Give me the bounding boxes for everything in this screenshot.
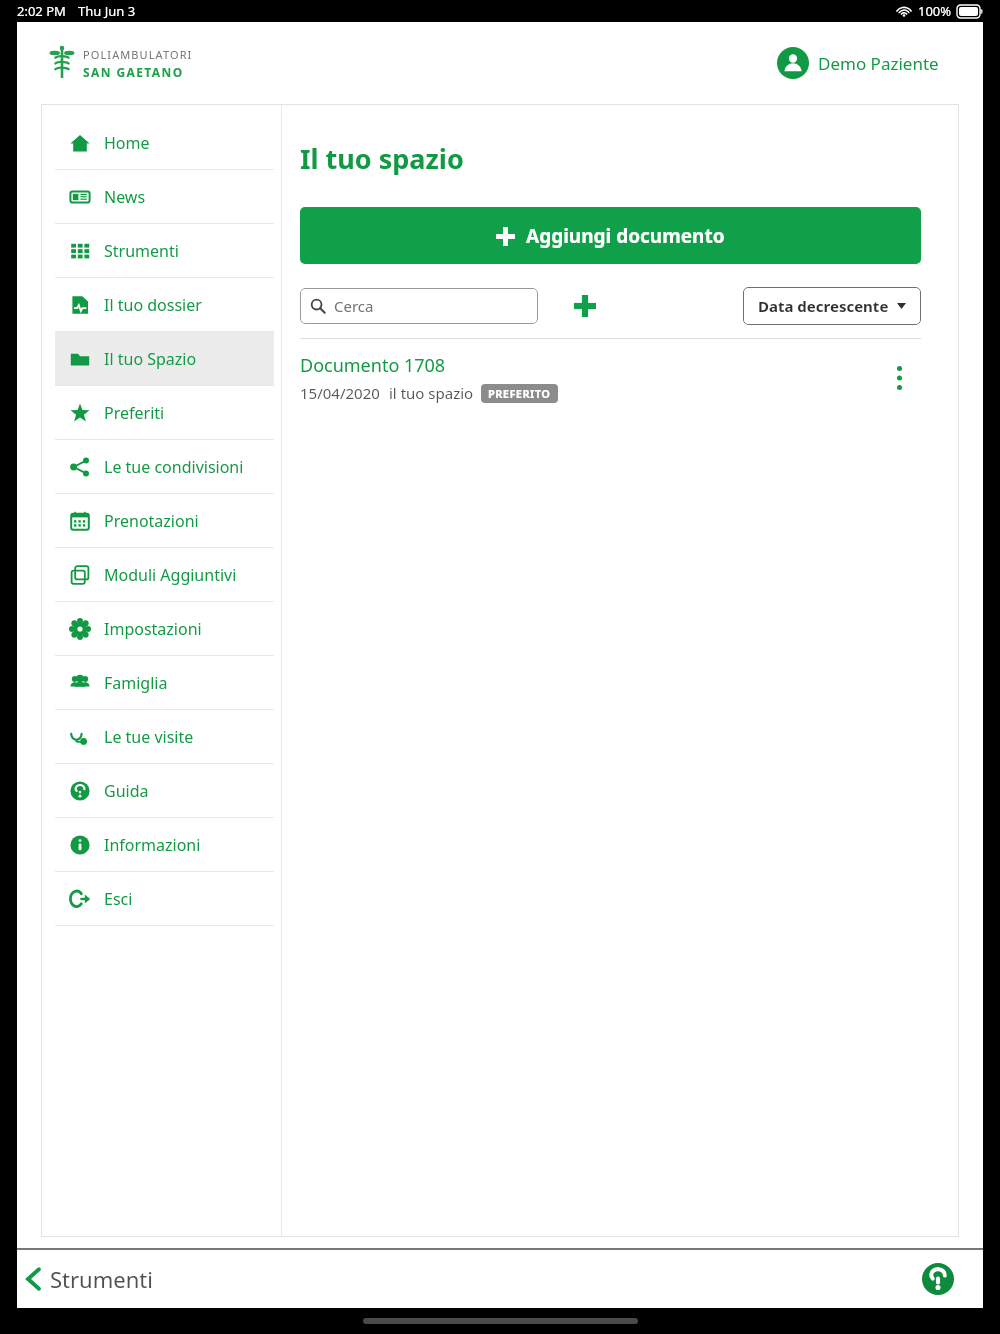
- staticText: Il tuo Spazio: [104, 348, 197, 370]
- button[interactable]: Prenotazioni: [55, 494, 274, 547]
- staticText: Famiglia: [104, 672, 168, 694]
- button[interactable]: Aiuto: [919, 1260, 957, 1298]
- staticText: Demo Paziente: [818, 52, 939, 75]
- button[interactable]: Data decrescente: [743, 287, 921, 325]
- staticText: Thu Jun 3: [78, 2, 136, 20]
- staticText: Cerca: [334, 296, 374, 316]
- staticText: Le tue visite: [104, 726, 194, 748]
- button[interactable]: Preferiti: [55, 386, 274, 439]
- staticText: Prenotazioni: [104, 510, 199, 532]
- button[interactable]: Aggiungi documento: [300, 207, 921, 264]
- staticText: 15/04/2020: [300, 383, 380, 403]
- staticText: SAN GAETANO: [83, 64, 184, 80]
- button[interactable]: Demo Paziente: [773, 43, 943, 83]
- button[interactable]: Esci: [55, 872, 274, 925]
- button[interactable]: Famiglia: [55, 656, 274, 709]
- staticText: News: [104, 186, 146, 208]
- staticText: Il tuo spazio: [300, 140, 464, 177]
- button[interactable]: Aggiungi filtro: [567, 288, 603, 324]
- button[interactable]: Il tuo Spazio: [55, 332, 274, 385]
- button[interactable]: Impostazioni: [55, 602, 274, 655]
- staticText: Strumenti: [104, 240, 179, 262]
- staticText: Strumenti: [50, 1264, 153, 1294]
- staticText: Il tuo dossier: [104, 294, 202, 316]
- button[interactable]: Il tuo dossier: [55, 278, 274, 331]
- staticText: Documento 1708: [300, 353, 446, 378]
- staticText: POLIAMBULATORI: [83, 47, 193, 62]
- staticText: Home: [104, 132, 150, 154]
- staticText: Aggiungi documento: [526, 223, 725, 249]
- staticText: Le tue condivisioni: [104, 456, 244, 478]
- staticText: Guida: [104, 780, 149, 802]
- button[interactable]: Strumenti: [17, 1258, 163, 1300]
- staticText: Moduli Aggiuntivi: [104, 564, 237, 586]
- staticText: Data decrescente: [758, 296, 889, 316]
- button[interactable]: News: [55, 170, 274, 223]
- button[interactable]: Moduli Aggiuntivi: [55, 548, 274, 601]
- button[interactable]: Documento 1708: [300, 339, 921, 417]
- button[interactable]: Le tue condivisioni: [55, 440, 274, 493]
- staticText: Preferiti: [104, 402, 165, 424]
- button[interactable]: Le tue visite: [55, 710, 274, 763]
- staticText: Esci: [104, 888, 133, 910]
- button[interactable]: Informazioni: [55, 818, 274, 871]
- staticText: il tuo spazio: [389, 383, 474, 403]
- staticText: 2:02 PM: [17, 2, 66, 20]
- staticText: Informazioni: [104, 834, 201, 856]
- button[interactable]: Guida: [55, 764, 274, 817]
- button[interactable]: Altre opzioni: [877, 356, 921, 400]
- button[interactable]: Cerca: [300, 288, 538, 324]
- button[interactable]: Home: [55, 116, 274, 169]
- staticText: PREFERITO: [488, 386, 551, 401]
- staticText: 100%: [918, 2, 952, 20]
- staticText: Impostazioni: [104, 618, 202, 640]
- button[interactable]: Strumenti: [55, 224, 274, 277]
